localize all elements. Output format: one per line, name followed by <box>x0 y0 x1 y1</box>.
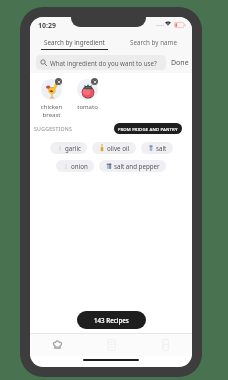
button[interactable]: salt <box>141 142 173 154</box>
other: Remove <box>55 78 62 85</box>
staticText: garlic <box>65 144 81 152</box>
other: Remove <box>91 78 98 85</box>
button[interactable]: Done <box>166 55 192 70</box>
staticText: Search by name <box>130 38 178 47</box>
button[interactable]: olive oil <box>92 142 136 154</box>
button[interactable]: Search by ingredient <box>38 36 110 53</box>
button[interactable]: What ingredient do you want to use? <box>36 55 166 70</box>
staticText: onion <box>71 162 88 170</box>
staticText: salt <box>156 144 167 152</box>
staticText: FROM FRIDGE AND PANTRY <box>118 126 178 132</box>
button[interactable]: garlic <box>50 142 87 154</box>
button[interactable]: 143 Recipes <box>77 311 146 329</box>
button[interactable]: FROM FRIDGE AND PANTRY <box>114 123 182 134</box>
button[interactable]: salt and pepper <box>99 160 166 172</box>
button[interactable]: Remove <box>72 77 103 98</box>
staticText: olive oil <box>107 144 130 152</box>
staticText: What ingredient do you want to use? <box>50 59 157 67</box>
staticText: tomato <box>72 103 103 111</box>
button[interactable]: Recipes <box>30 334 84 356</box>
staticText: 10:29 <box>38 21 56 31</box>
button[interactable]: Search by name <box>118 36 189 53</box>
button[interactable]: onion <box>56 160 94 172</box>
staticText: chicken breast <box>36 103 67 119</box>
staticText: salt and pepper <box>114 162 160 170</box>
staticText: Search by ingredient <box>44 38 105 47</box>
staticText: SUGGESTIONS <box>34 125 73 132</box>
staticText: 143 Recipes <box>94 316 129 324</box>
staticText: Done <box>171 58 189 68</box>
button[interactable]: Remove <box>36 77 67 98</box>
